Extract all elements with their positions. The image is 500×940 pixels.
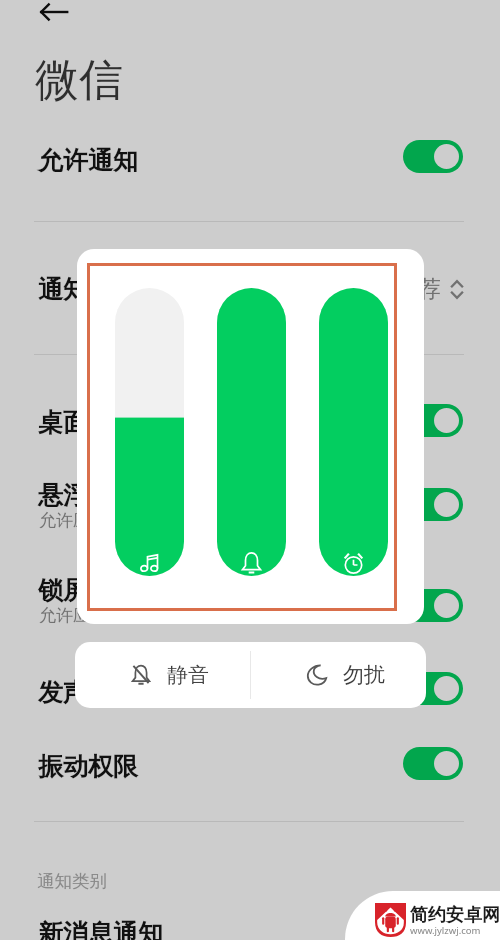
staticText: 允许应用在锁屏界面显示通知	[39, 605, 260, 626]
button[interactable]: 静音	[75, 642, 250, 708]
staticText: 锁屏通知	[38, 575, 138, 606]
button[interactable]: 桌面图标角标	[0, 400, 500, 442]
staticText: 振动权限	[38, 751, 138, 782]
button[interactable]: 通知管理	[0, 270, 500, 308]
button[interactable]: 悬浮通知	[0, 472, 500, 544]
staticText: www.jylzwj.com	[410, 924, 481, 937]
button[interactable]: 发声	[0, 668, 500, 710]
button[interactable]: Volume slider	[319, 288, 388, 576]
button[interactable]: 新消息通知	[0, 905, 500, 940]
staticText: 静音	[167, 662, 209, 688]
staticText: 推荐	[395, 275, 441, 304]
staticText: 通知管理	[38, 274, 433, 305]
staticText: 新消息通知	[38, 918, 163, 940]
button[interactable]: Toggle	[403, 672, 463, 705]
button[interactable]: Toggle	[403, 140, 463, 173]
button[interactable]: Toggle	[403, 747, 463, 780]
staticText: 悬浮通知	[38, 480, 138, 511]
button[interactable]: Back	[22, 0, 86, 36]
button[interactable]: Volume slider	[115, 288, 184, 576]
staticText: 允许应用在屏幕顶部显示通知	[39, 510, 260, 531]
staticText: 通知类别	[37, 870, 107, 892]
button[interactable]: Toggle	[403, 589, 463, 622]
staticText: 微信	[35, 53, 123, 108]
button[interactable]: 振动权限	[0, 744, 500, 786]
button[interactable]: 勿扰	[251, 642, 426, 708]
staticText: 发声	[38, 677, 88, 708]
staticText: 简约安卓网	[410, 904, 500, 927]
staticText: 勿扰	[343, 662, 385, 688]
button[interactable]: Toggle	[403, 488, 463, 521]
button[interactable]: Volume slider	[217, 288, 286, 576]
button[interactable]: 锁屏通知	[0, 567, 500, 639]
button[interactable]: Toggle	[403, 404, 463, 437]
staticText: 桌面图标角标	[38, 407, 188, 438]
staticText: 允许通知	[38, 145, 138, 176]
button[interactable]: 允许通知	[0, 140, 500, 180]
